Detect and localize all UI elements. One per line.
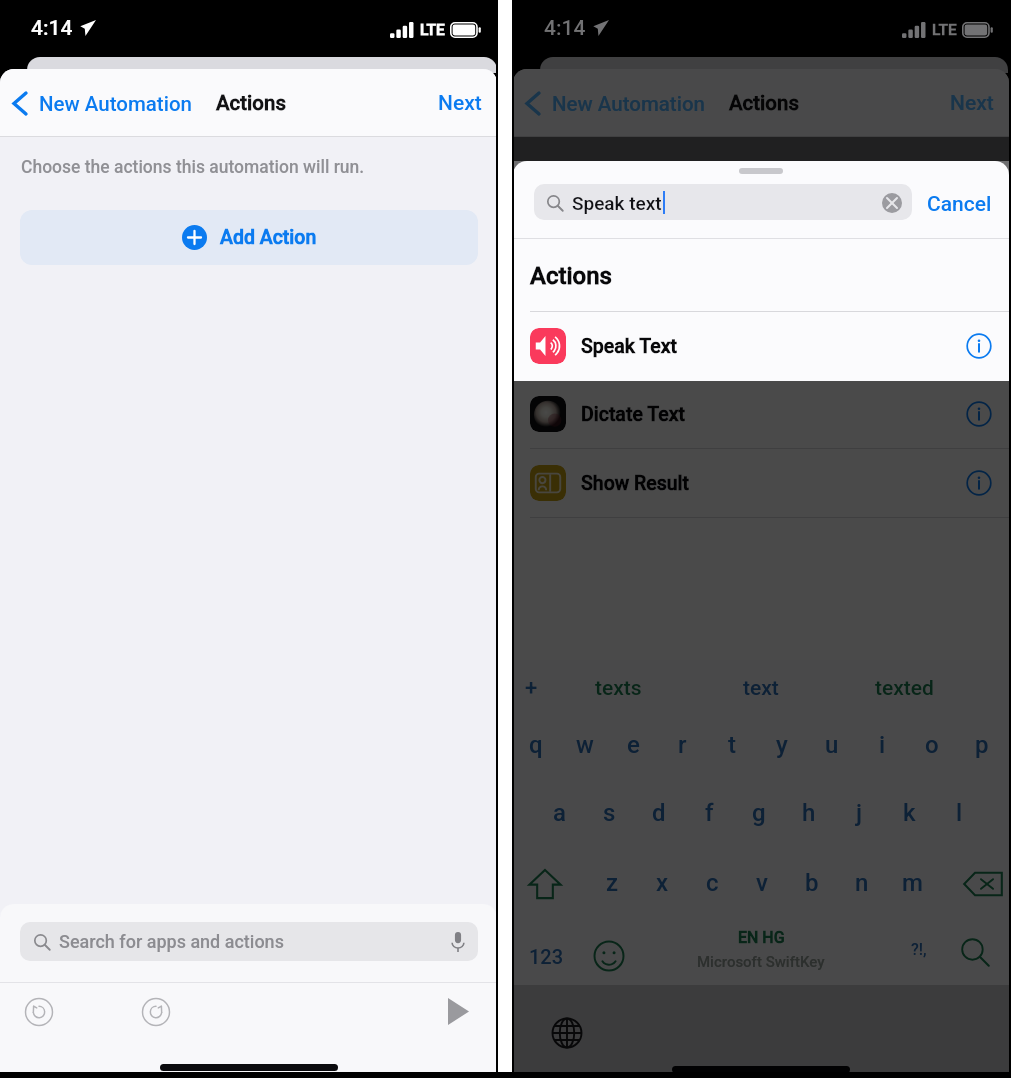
staticText: Choose the actions this automation will … bbox=[21, 157, 365, 178]
staticText: Speak text bbox=[572, 192, 662, 214]
button[interactable]: Clear search bbox=[882, 193, 902, 213]
button[interactable]: Redo bbox=[141, 997, 171, 1027]
button[interactable]: texted bbox=[856, 673, 952, 703]
staticText: New Automation bbox=[39, 92, 192, 116]
button[interactable]: z bbox=[587, 864, 637, 902]
button[interactable]: Info bbox=[966, 401, 992, 427]
staticText: b bbox=[805, 869, 819, 897]
button[interactable]: Shift bbox=[528, 868, 562, 900]
staticText: 4:14 bbox=[544, 16, 586, 41]
button[interactable]: x bbox=[637, 864, 687, 902]
staticText: v bbox=[756, 869, 768, 897]
staticText: texted bbox=[875, 676, 934, 701]
staticText: l bbox=[956, 799, 963, 827]
staticText: Speak Text bbox=[581, 335, 678, 358]
staticText: g bbox=[752, 799, 766, 827]
staticText: LTE bbox=[420, 21, 445, 39]
staticText: t bbox=[728, 731, 736, 759]
button[interactable]: text bbox=[721, 673, 801, 703]
staticText: a bbox=[553, 799, 566, 827]
button[interactable]: v bbox=[737, 864, 787, 902]
staticText: m bbox=[902, 869, 923, 897]
staticText: u bbox=[825, 731, 839, 759]
button[interactable]: y bbox=[757, 726, 807, 764]
button[interactable]: j bbox=[834, 794, 884, 832]
button[interactable]: Add Action bbox=[20, 210, 478, 265]
staticText: Search for apps and actions bbox=[59, 931, 284, 952]
button[interactable]: Info bbox=[966, 470, 992, 496]
button[interactable]: 123 bbox=[525, 940, 567, 972]
staticText: Actions bbox=[216, 91, 286, 115]
button[interactable]: Next bbox=[935, 83, 1009, 124]
staticText: p bbox=[975, 731, 989, 759]
button[interactable]: Search bbox=[959, 936, 991, 968]
button[interactable]: e bbox=[609, 726, 658, 764]
staticText: Add Action bbox=[220, 226, 317, 249]
button[interactable]: n bbox=[837, 864, 887, 902]
button[interactable]: b bbox=[787, 864, 837, 902]
button[interactable]: s bbox=[584, 794, 634, 832]
staticText: LTE bbox=[932, 21, 957, 39]
button[interactable]: New Automation bbox=[513, 91, 709, 116]
button[interactable]: Undo bbox=[24, 997, 54, 1027]
staticText: r bbox=[678, 731, 687, 759]
button[interactable]: texts bbox=[578, 673, 658, 703]
button[interactable]: Switch keyboard bbox=[551, 1017, 583, 1049]
button[interactable]: d bbox=[634, 794, 684, 832]
button[interactable]: ?!, bbox=[901, 934, 937, 964]
button[interactable]: f bbox=[684, 794, 734, 832]
staticText: n bbox=[855, 869, 869, 897]
staticText: i bbox=[879, 731, 886, 759]
staticText: Dictate Text bbox=[581, 403, 685, 426]
button[interactable]: Info bbox=[966, 333, 992, 359]
button[interactable]: Play bbox=[447, 998, 469, 1025]
button[interactable]: a bbox=[534, 794, 584, 832]
staticText: j bbox=[856, 799, 863, 827]
staticText: Show Result bbox=[581, 472, 690, 495]
staticText: Actions bbox=[530, 262, 612, 290]
button[interactable]: i bbox=[857, 726, 907, 764]
staticText: e bbox=[627, 731, 640, 759]
button[interactable]: p bbox=[957, 726, 1007, 764]
staticText: New Automation bbox=[552, 92, 705, 116]
button[interactable]: Speak text bbox=[534, 184, 912, 220]
staticText: Actions bbox=[729, 91, 799, 115]
staticText: 4:14 bbox=[31, 16, 73, 41]
staticText: d bbox=[652, 799, 666, 827]
button[interactable]: w bbox=[560, 726, 609, 764]
button[interactable]: Show Result bbox=[513, 449, 1009, 517]
staticText: Cancel bbox=[927, 192, 992, 217]
staticText: ?!, bbox=[911, 940, 927, 959]
staticText: f bbox=[705, 799, 714, 827]
button[interactable]: q bbox=[513, 726, 560, 764]
button[interactable]: + bbox=[516, 673, 546, 703]
button[interactable]: o bbox=[907, 726, 957, 764]
staticText: o bbox=[925, 731, 939, 759]
button[interactable]: t bbox=[707, 726, 757, 764]
staticText: texts bbox=[595, 676, 642, 701]
button[interactable]: r bbox=[658, 726, 707, 764]
staticText: EN HG bbox=[738, 928, 785, 947]
staticText: z bbox=[606, 869, 619, 897]
button[interactable]: Cancel bbox=[921, 186, 998, 223]
staticText: x bbox=[656, 869, 669, 897]
button[interactable]: Search for apps and actions bbox=[20, 922, 478, 961]
button[interactable]: u bbox=[807, 726, 857, 764]
button[interactable]: Speak Text bbox=[513, 312, 1009, 380]
button[interactable]: Next bbox=[423, 83, 497, 124]
button[interactable]: l bbox=[934, 794, 984, 832]
staticText: Microsoft SwiftKey bbox=[697, 953, 825, 971]
button[interactable]: h bbox=[784, 794, 834, 832]
button[interactable]: Backspace bbox=[963, 870, 1003, 898]
button[interactable]: c bbox=[687, 864, 737, 902]
button[interactable]: m bbox=[887, 864, 937, 902]
staticText: 123 bbox=[529, 945, 564, 968]
button[interactable]: New Automation bbox=[0, 91, 196, 116]
button[interactable]: Dictate Text bbox=[513, 380, 1009, 448]
button[interactable]: g bbox=[734, 794, 784, 832]
staticText: + bbox=[525, 675, 538, 701]
staticText: k bbox=[903, 799, 916, 827]
button[interactable]: k bbox=[884, 794, 934, 832]
button[interactable]: Emoji bbox=[593, 940, 625, 972]
staticText: w bbox=[576, 731, 594, 759]
